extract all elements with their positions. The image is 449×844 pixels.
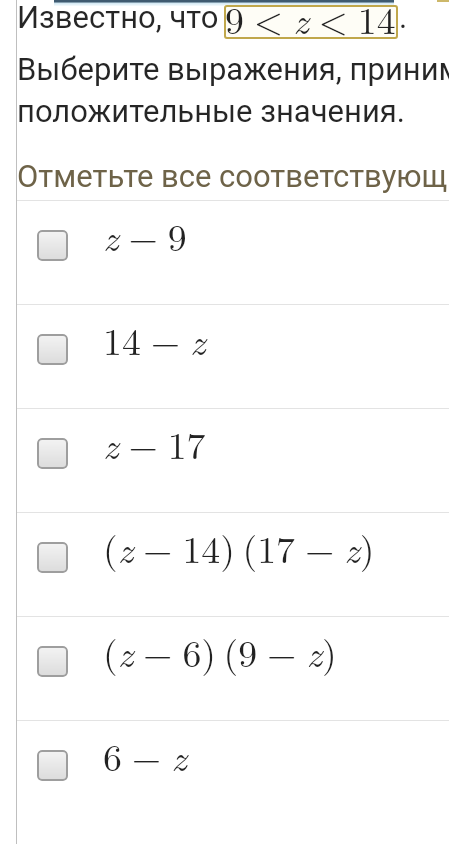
staticText: . [399, 0, 408, 35]
button[interactable]: Отметить (z − 6)(9 − z) [37, 646, 68, 677]
staticText: Отметьте все соответствующие варианты [17, 158, 449, 194]
staticText: 6 − z [103, 728, 187, 782]
staticText: 9 < z < 14 [225, 0, 396, 45]
staticText: Известно, что [17, 0, 227, 35]
button[interactable]: Отметить (z − 14)(17 − z) [37, 542, 68, 573]
staticText: z − 17 [103, 416, 206, 470]
button[interactable]: 6 − z [0, 720, 449, 824]
button[interactable]: Отметить z − 9 [37, 230, 68, 261]
button[interactable]: (z − 14)(17 − z) [0, 512, 449, 616]
staticText: z − 9 [103, 208, 187, 262]
staticText: Выберите выражения, принимающие [17, 51, 449, 87]
staticText: (z − 6) (9 − z) [103, 624, 337, 678]
staticText: (z − 14) (17 − z) [103, 520, 375, 574]
button[interactable]: z − 9 [0, 200, 449, 304]
button[interactable]: Отметить 14 − z [37, 334, 68, 365]
staticText: 14 − z [103, 312, 206, 366]
button[interactable]: Отметить z − 17 [37, 438, 68, 469]
button[interactable]: (z − 6)(9 − z) [0, 616, 449, 720]
button[interactable]: 14 − z [0, 304, 449, 408]
button[interactable]: Отметить 6 − z [37, 750, 68, 781]
staticText: положительные значения. [17, 93, 405, 129]
button[interactable]: z − 17 [0, 408, 449, 512]
